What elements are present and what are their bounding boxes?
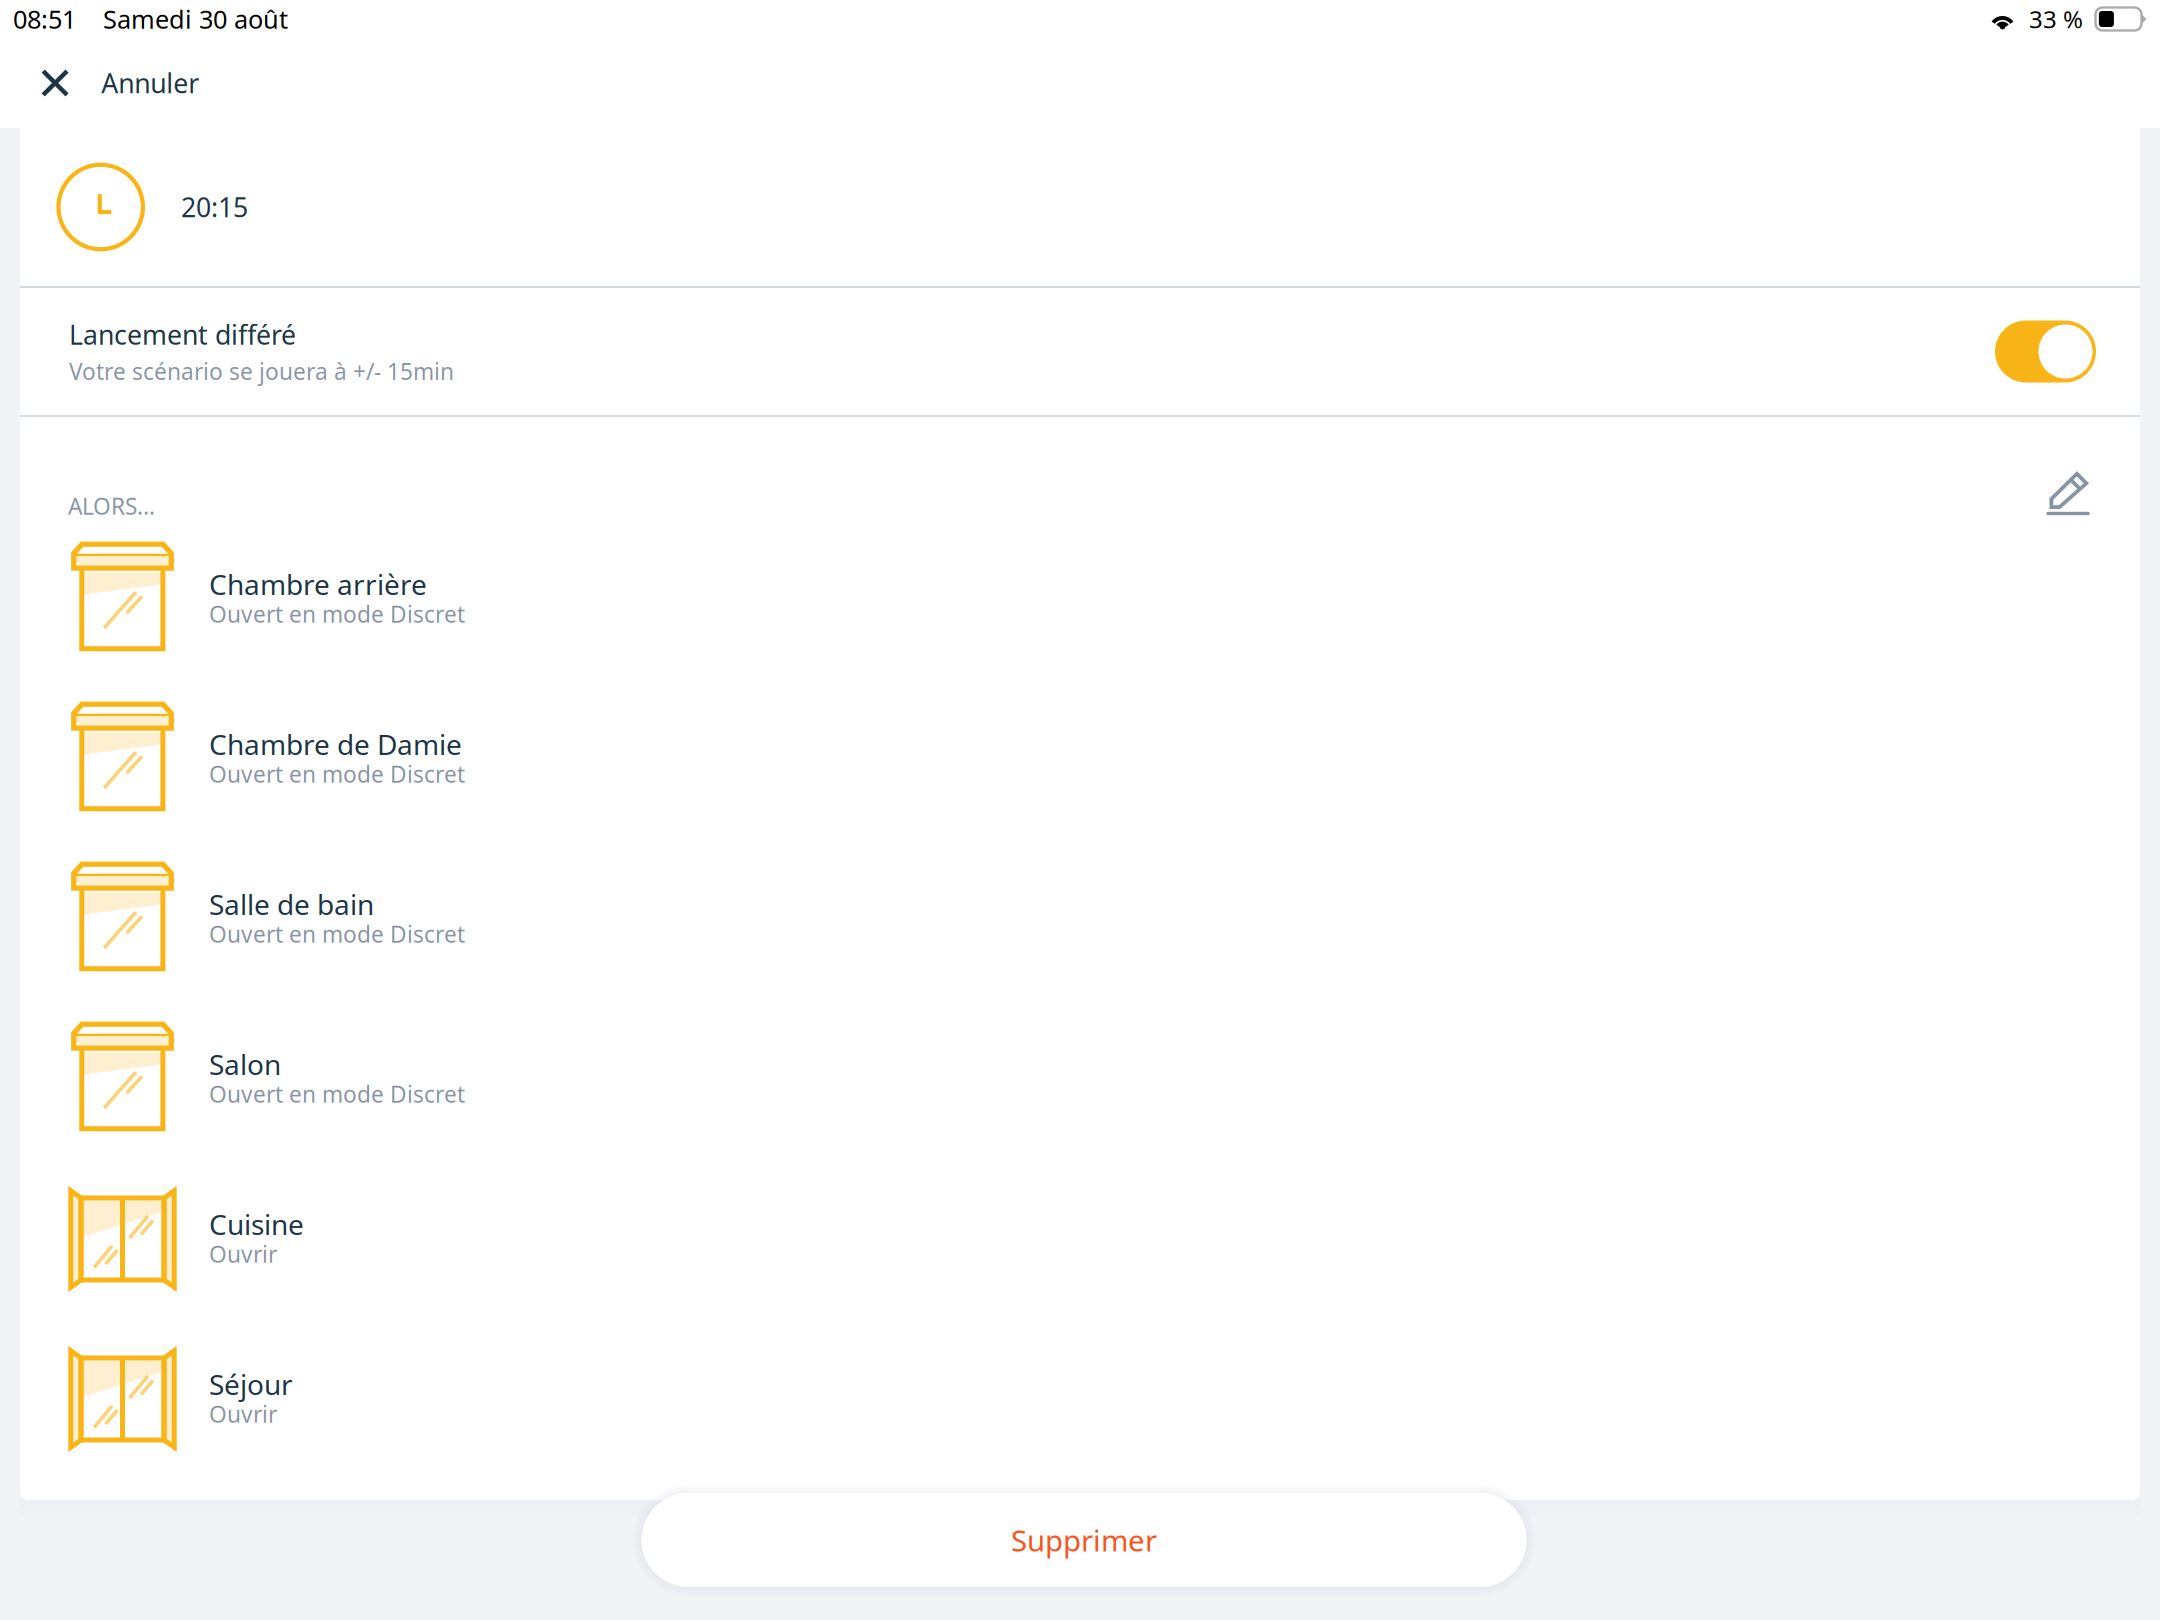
- staticText: 08:51: [13, 2, 76, 36]
- button[interactable]: Chambre de Damie: [20, 677, 2140, 837]
- button[interactable]: Lancement différé: [1995, 320, 2096, 382]
- staticText: Ouvrir: [209, 1399, 277, 1429]
- staticText: Votre scénario se jouera à +/- 15min: [69, 356, 454, 386]
- staticText: ALORS...: [68, 491, 155, 521]
- button[interactable]: Séjour: [20, 1317, 2140, 1477]
- staticText: Cuisine: [209, 1205, 304, 1243]
- staticText: Lancement différé: [69, 317, 296, 352]
- staticText: Séjour: [209, 1365, 293, 1403]
- staticText: Ouvrir: [209, 1239, 277, 1269]
- staticText: Salon: [209, 1045, 281, 1083]
- staticText: Ouvert en mode Discret: [209, 1079, 465, 1109]
- staticText: Samedi 30 août: [103, 2, 288, 36]
- staticText: Chambre arrière: [209, 565, 427, 603]
- staticText: Salle de bain: [209, 885, 374, 923]
- button[interactable]: Salon: [20, 997, 2140, 1157]
- button[interactable]: Supprimer: [632, 1484, 1535, 1596]
- button[interactable]: Cuisine: [20, 1157, 2140, 1317]
- staticText: Supprimer: [1011, 1520, 1157, 1559]
- button[interactable]: Annuler: [0, 38, 243, 128]
- staticText: Ouvert en mode Discret: [209, 599, 465, 629]
- button[interactable]: Modifier: [2026, 453, 2110, 528]
- staticText: Ouvert en mode Discret: [209, 919, 465, 949]
- staticText: 20:15: [181, 189, 248, 225]
- staticText: Chambre de Damie: [209, 725, 462, 763]
- button[interactable]: Chambre arrière: [20, 517, 2140, 677]
- button[interactable]: Salle de bain: [20, 837, 2140, 997]
- staticText: Ouvert en mode Discret: [209, 759, 465, 789]
- staticText: 33 %: [2029, 3, 2083, 35]
- staticText: Annuler: [101, 65, 199, 101]
